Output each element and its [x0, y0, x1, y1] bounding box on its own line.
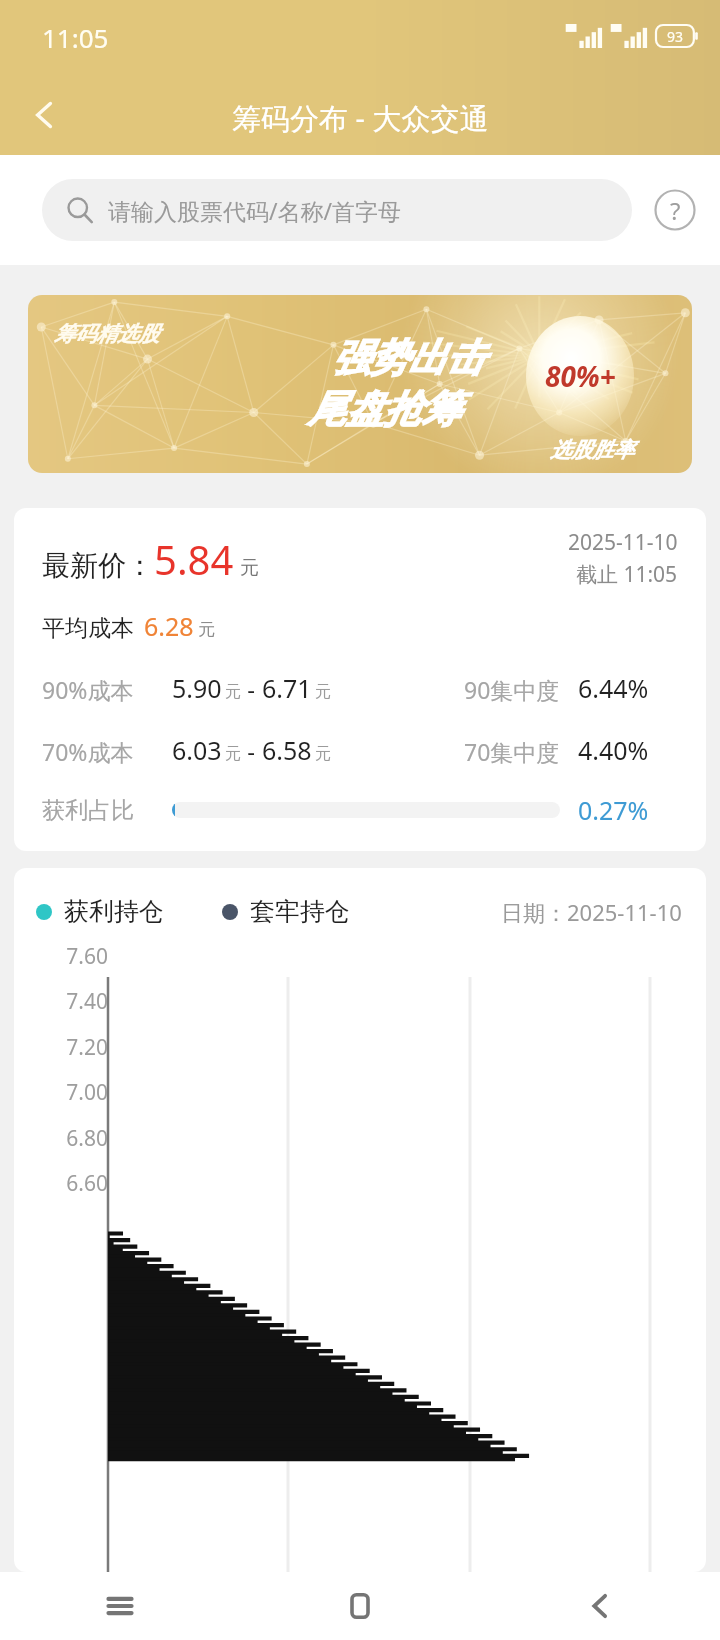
staticText: 元	[225, 682, 241, 702]
button[interactable]: Back	[480, 1572, 720, 1640]
staticText: 元	[198, 619, 215, 640]
staticText: 6.28	[144, 609, 194, 643]
staticText: 0.27%	[578, 793, 678, 827]
staticText: 元	[240, 556, 259, 580]
staticText: 平均成本	[42, 614, 134, 643]
staticText: 尾盘抢筹	[308, 385, 460, 433]
staticText: 6.58	[262, 733, 312, 767]
staticText: 70%成本	[42, 736, 172, 767]
button[interactable]: Help	[652, 187, 698, 233]
staticText: 元	[315, 744, 331, 764]
staticText: 6.44%	[578, 671, 678, 705]
button[interactable]: 请输入股票代码/名称/首字母	[42, 179, 632, 241]
staticText: 5.90	[172, 671, 222, 705]
staticText: 7.20	[30, 1033, 108, 1062]
staticText: 11:05	[42, 20, 109, 55]
staticText: 强势出击	[332, 334, 484, 382]
staticText: 最新价：	[42, 548, 154, 583]
staticText: 截止 11:05	[576, 560, 678, 589]
staticText: 90%成本	[42, 674, 172, 705]
staticText: ?	[670, 194, 681, 227]
staticText: 80%+	[545, 357, 616, 395]
staticText: 93	[667, 27, 684, 46]
staticText: 获利占比	[42, 796, 172, 825]
staticText: 选股胜率	[550, 437, 634, 463]
button[interactable]: Recents	[0, 1572, 240, 1640]
staticText: 套牢持仓	[250, 896, 350, 927]
staticText: 元	[315, 682, 331, 702]
button[interactable]: Home	[240, 1572, 480, 1640]
staticText: 请输入股票代码/名称/首字母	[108, 195, 402, 226]
staticText: 筹码分布 - 大众交通	[232, 98, 489, 138]
staticText: 6.71	[262, 671, 312, 705]
staticText: 7.60	[30, 942, 108, 971]
staticText: 日期：2025-11-10	[501, 897, 682, 927]
staticText: -	[241, 672, 262, 705]
staticText: 获利持仓	[64, 896, 164, 927]
staticText: 70集中度	[464, 736, 560, 767]
button[interactable]: 筹码精选股	[28, 295, 692, 473]
staticText: 2025-11-10	[568, 528, 678, 557]
staticText: 7.40	[30, 987, 108, 1016]
staticText: 6.80	[30, 1124, 108, 1153]
staticText: 元	[225, 744, 241, 764]
staticText: -	[241, 734, 262, 767]
staticText: 90集中度	[464, 674, 560, 705]
staticText: 7.00	[30, 1078, 108, 1107]
button[interactable]: Back	[16, 87, 72, 143]
staticText: 4.40%	[578, 733, 678, 767]
staticText: 筹码精选股	[54, 321, 159, 347]
staticText: 5.84	[154, 532, 234, 586]
staticText: 6.03	[172, 733, 222, 767]
staticText: 6.60	[30, 1169, 108, 1198]
